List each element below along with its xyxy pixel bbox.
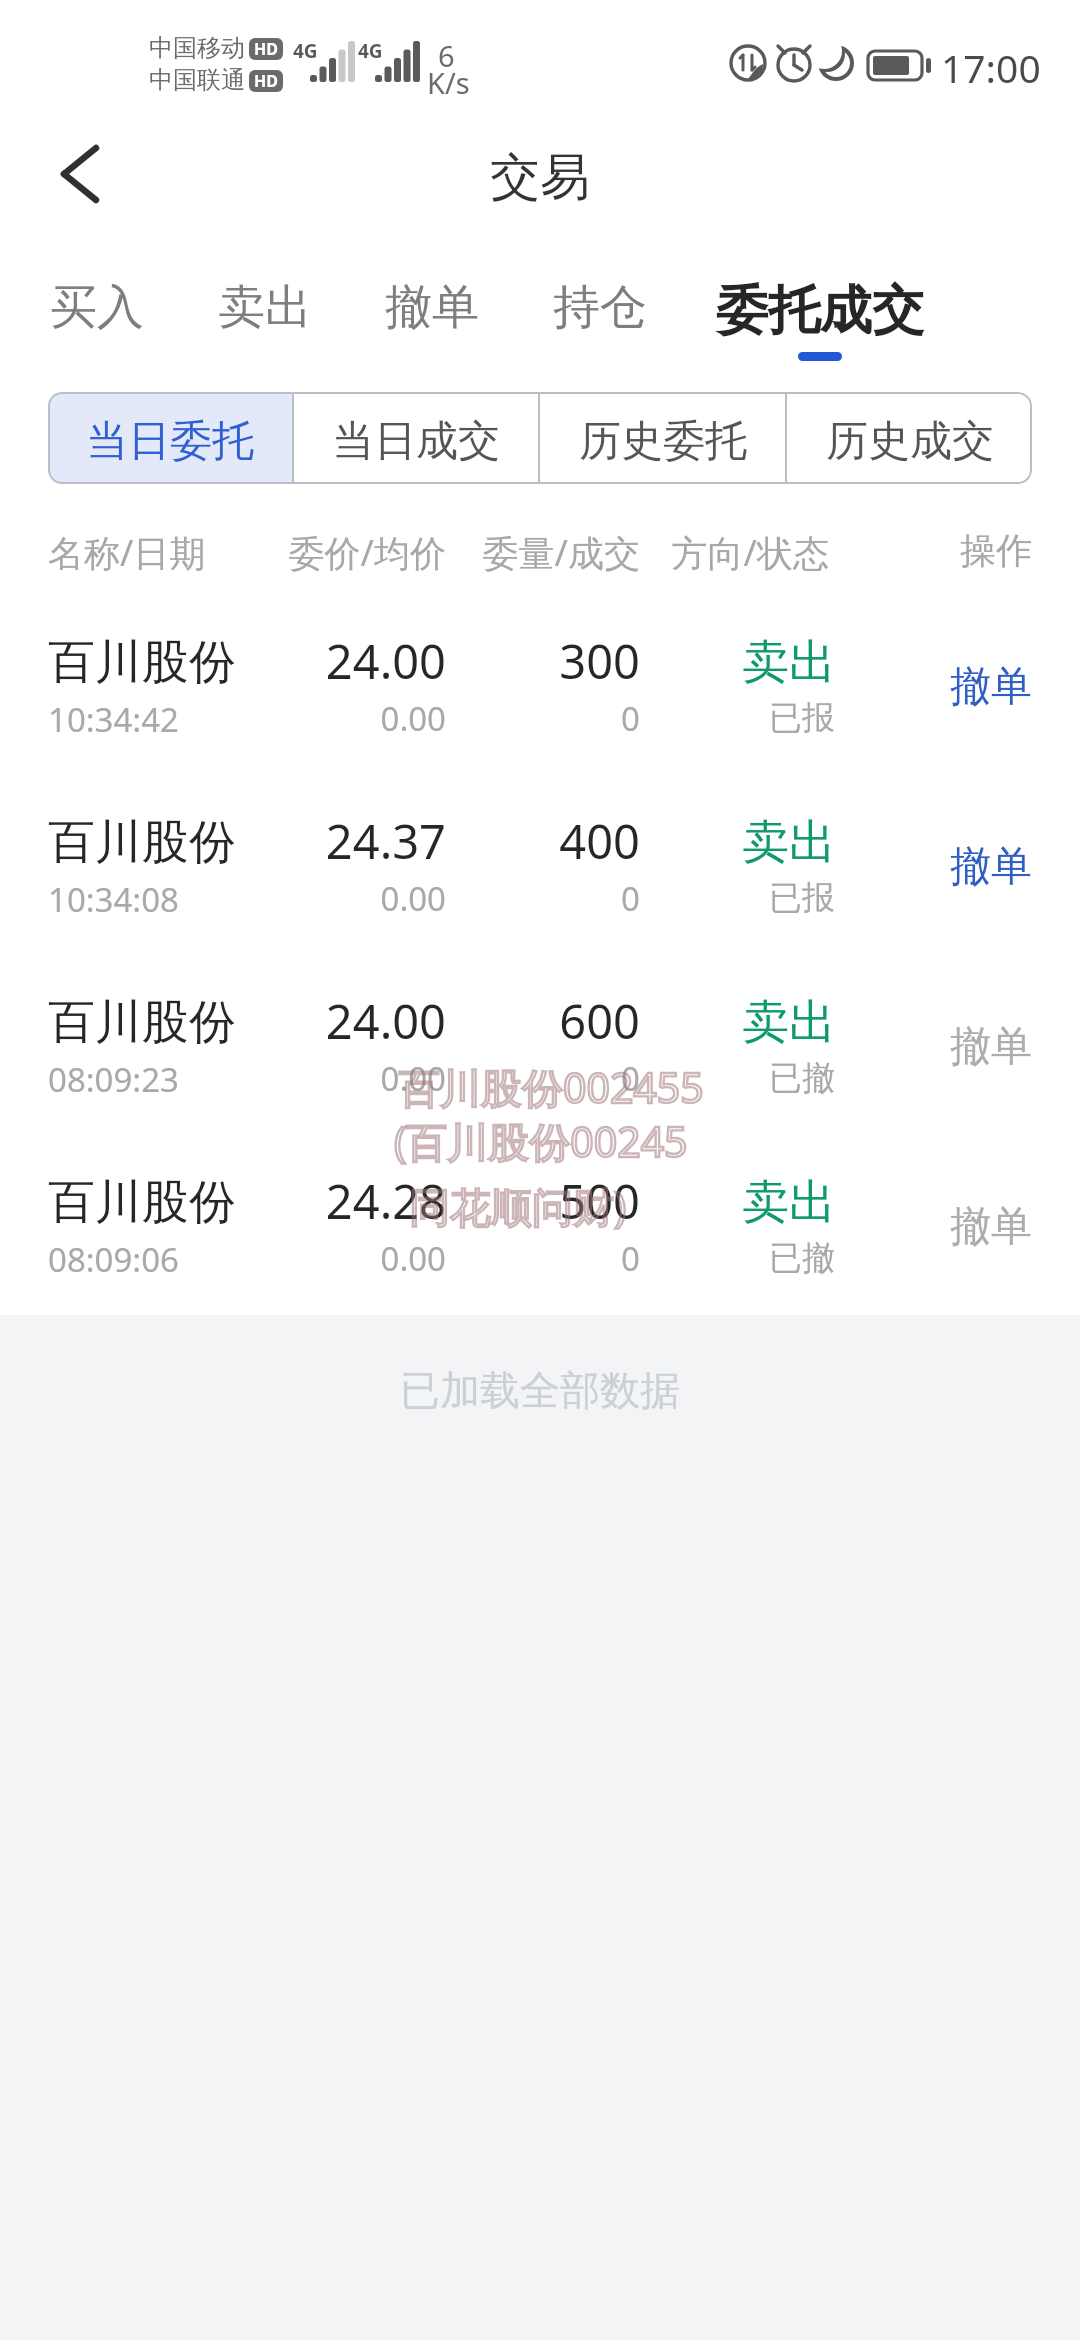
button[interactable]: 撤单 [912, 647, 1032, 727]
staticText: 400 [240, 809, 640, 873]
staticText: 撤单 [950, 1021, 1032, 1073]
staticText: 0 [240, 876, 640, 921]
staticText: 名称/日期 [48, 528, 206, 577]
staticText: 当日委托 [86, 415, 254, 468]
staticText: 卖出 [436, 993, 836, 1052]
other: Data saver [729, 44, 769, 84]
button[interactable]: 百川股份 [0, 983, 1080, 1143]
other: Battery [866, 50, 936, 82]
staticText: 委价/均价 [46, 528, 446, 577]
staticText: 08:09:06 [48, 1237, 179, 1282]
staticText: 撤单 [950, 1201, 1032, 1253]
button[interactable]: 撤单 [912, 827, 1032, 907]
button[interactable]: 百川股份 [0, 803, 1080, 963]
staticText: 买入 [37, 278, 157, 337]
staticText: 24.28 [46, 1169, 446, 1233]
button[interactable]: 撤单 [912, 1007, 1032, 1087]
staticText: 0.00 [46, 876, 446, 921]
staticText: 17:00 [941, 41, 1041, 94]
button[interactable]: Back [38, 138, 110, 210]
staticText: 4G [358, 38, 383, 64]
staticText: HD [254, 38, 278, 60]
staticText: 10:34:08 [48, 877, 179, 922]
staticText: 0.00 [46, 696, 446, 741]
staticText: 撤单 [372, 278, 492, 337]
staticText: 08:09:23 [48, 1057, 179, 1102]
staticText: 500 [240, 1169, 640, 1233]
staticText: 已撤 [435, 1237, 835, 1279]
staticText: 历史成交 [826, 415, 994, 468]
staticText: 卖出 [436, 813, 836, 872]
other: Alarm set [774, 40, 814, 84]
button[interactable]: 当日成交 [294, 392, 538, 484]
button[interactable]: 持仓 [540, 278, 660, 364]
button[interactable]: 委托成交 [702, 278, 938, 364]
staticText: 百川股份002455 [399, 1059, 704, 1115]
staticText: 600 [240, 989, 640, 1053]
button[interactable]: 历史委托 [540, 392, 785, 484]
staticText: 百川股份 [48, 633, 236, 692]
staticText: 百川股份 [48, 1173, 236, 1232]
button[interactable]: 撤单 [912, 1187, 1032, 1267]
staticText: 卖出 [436, 633, 836, 692]
staticText: 卖出 [436, 1173, 836, 1232]
staticText: 委托成交 [702, 278, 938, 344]
staticText: K/s [427, 63, 470, 102]
staticText: 已报 [435, 697, 835, 739]
staticText: 10:34:42 [48, 697, 179, 742]
staticText: 方向/状态 [429, 528, 829, 577]
staticText: 中国移动 [149, 33, 245, 63]
staticText: 撤单 [950, 661, 1032, 713]
staticText: 卖出 [205, 278, 325, 337]
staticText: 委量/成交 [240, 528, 640, 577]
staticText: 历史委托 [579, 415, 747, 468]
staticText: 同花顺问财) [409, 1178, 627, 1234]
button[interactable]: 撤单 [372, 278, 492, 364]
button[interactable]: 当日委托 [48, 392, 292, 484]
staticText: 撤单 [950, 841, 1032, 893]
staticText: HD [254, 70, 278, 92]
staticText: 0 [240, 1236, 640, 1281]
staticText: (百川股份00245 [394, 1113, 688, 1169]
button[interactable]: 百川股份 [0, 1163, 1080, 1323]
staticText: 0.00 [46, 1056, 446, 1101]
staticText: 6 [438, 36, 455, 75]
staticText: 24.00 [46, 629, 446, 693]
staticText: 已加载全部数据 [0, 1365, 1080, 1415]
staticText: 300 [240, 629, 640, 693]
staticText: 中国联通 [149, 65, 245, 95]
staticText: 0 [240, 696, 640, 741]
staticText: 0 [240, 1056, 640, 1101]
staticText: 交易 [0, 146, 1080, 209]
staticText: 操作 [632, 528, 1032, 573]
staticText: 百川股份 [48, 813, 236, 872]
other: Do not disturb [817, 44, 859, 86]
button[interactable]: 买入 [37, 278, 157, 364]
staticText: 24.00 [46, 989, 446, 1053]
staticText: 持仓 [540, 278, 660, 337]
staticText: 已报 [435, 877, 835, 919]
staticText: 4G [293, 38, 318, 64]
staticText: 百川股份 [48, 993, 236, 1052]
staticText: 当日成交 [332, 415, 500, 468]
staticText: 已撤 [435, 1057, 835, 1099]
button[interactable]: 历史成交 [787, 392, 1032, 484]
button[interactable]: 百川股份 [0, 623, 1080, 783]
staticText: 24.37 [46, 809, 446, 873]
staticText: 0.00 [46, 1236, 446, 1281]
button[interactable]: 卖出 [205, 278, 325, 364]
